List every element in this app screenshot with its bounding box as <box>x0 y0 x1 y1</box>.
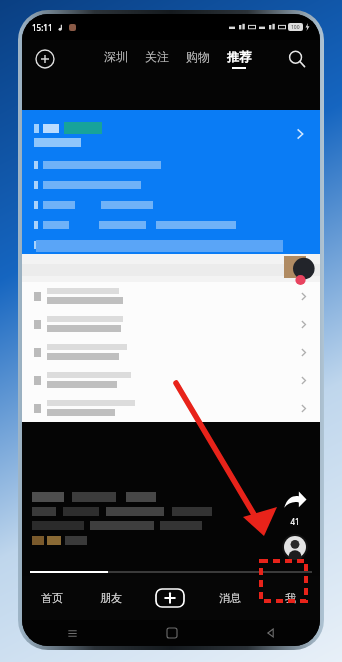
button[interactable]: 推荐 <box>225 49 253 69</box>
button[interactable]: Search <box>284 46 310 72</box>
staticText: 深圳 <box>104 49 128 64</box>
button[interactable]: Create <box>140 576 200 620</box>
button[interactable] <box>22 282 320 310</box>
button[interactable] <box>22 366 320 394</box>
staticText: 消息 <box>219 591 241 605</box>
button[interactable]: Profile <box>282 534 308 560</box>
button[interactable]: 首页 <box>22 576 81 620</box>
button[interactable]: 我 <box>260 576 320 620</box>
button[interactable] <box>22 394 320 422</box>
staticText: 我 <box>285 591 296 605</box>
button[interactable] <box>22 338 320 366</box>
button[interactable] <box>22 310 320 338</box>
button[interactable]: Share <box>280 486 310 516</box>
staticText: 100 <box>291 24 300 31</box>
button[interactable]: 购物 <box>184 49 212 69</box>
staticText: 推荐 <box>227 49 251 64</box>
staticText: 首页 <box>41 591 63 605</box>
button[interactable]: 消息 <box>200 576 260 620</box>
button[interactable]: 朋友 <box>81 576 140 620</box>
button[interactable] <box>22 110 320 254</box>
staticText: 关注 <box>145 49 169 64</box>
staticText: 朋友 <box>100 591 122 605</box>
button[interactable]: 深圳 <box>102 49 130 69</box>
staticText: 购物 <box>186 49 210 64</box>
button[interactable]: 关注 <box>143 49 171 69</box>
button[interactable]: Add <box>32 46 58 72</box>
staticText: 15:11 <box>32 22 53 33</box>
staticText: 41 <box>290 516 300 527</box>
